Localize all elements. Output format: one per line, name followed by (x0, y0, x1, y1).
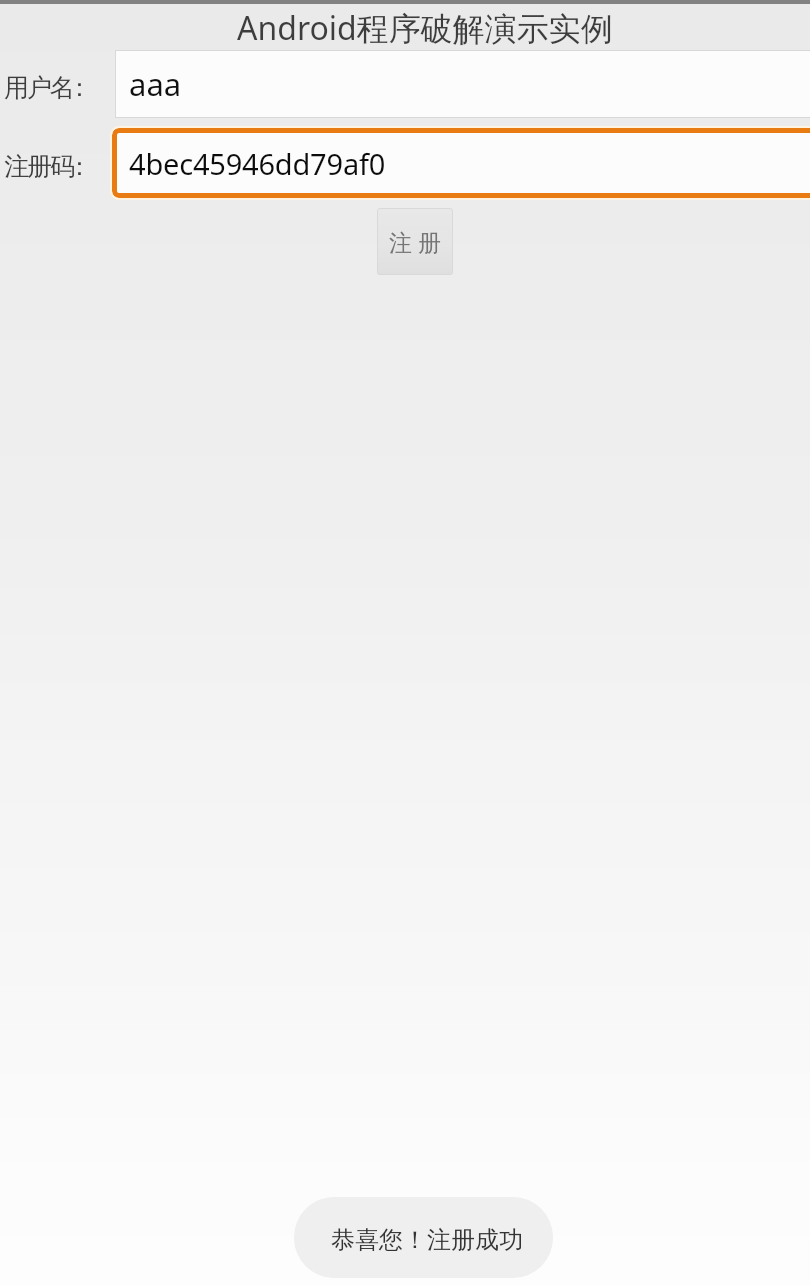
staticText: 注册码 (5, 151, 74, 182)
staticText: 用户名 (5, 72, 74, 103)
other: Toast: 恭喜您！注册成功 (294, 1197, 553, 1278)
button[interactable]: aaa (115, 50, 810, 118)
staticText: ： (67, 151, 92, 182)
staticText: 注 册 (389, 226, 441, 257)
staticText: 恭喜您！注册成功 (331, 1225, 523, 1255)
staticText: Android程序破解演示实例 (237, 6, 613, 50)
button[interactable]: 注 册 (377, 208, 453, 275)
staticText: 4bec45946dd79af0 (129, 144, 386, 183)
staticText: ： (67, 72, 92, 103)
button[interactable]: 4bec45946dd79af0 (112, 128, 810, 198)
staticText: aaa (129, 63, 182, 105)
